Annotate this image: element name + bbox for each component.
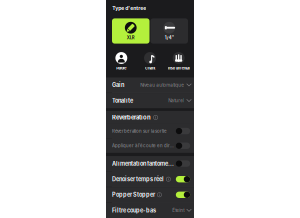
button[interactable]: Instrumental (164, 52, 193, 71)
button[interactable]: Chant (136, 52, 164, 71)
staticText: Gain (112, 82, 124, 88)
button[interactable]: Réverbération sur la sortie (106, 124, 194, 138)
staticText: XLR (127, 35, 135, 40)
button[interactable]: Popper Stopper (106, 187, 194, 202)
button[interactable]: Denoiser temps réel (106, 172, 194, 187)
staticText: Réverbération (112, 114, 151, 121)
button[interactable]: Alimentation fantôme... (106, 156, 194, 171)
staticText: Filtre coupe-bas (112, 207, 156, 214)
staticText: 1/4" (165, 35, 174, 40)
button[interactable]: XLR (112, 18, 149, 44)
staticText: Tonalité (112, 97, 133, 104)
staticText: Denoiser temps réel (112, 176, 164, 183)
button[interactable]: Tonalité (106, 93, 194, 108)
staticText: Naturel (168, 98, 184, 103)
staticText: Alimentation fantôme... (112, 160, 174, 167)
staticText: Chant (145, 66, 155, 71)
button[interactable]: Gain (106, 77, 194, 93)
staticText: Niveau automatique (140, 82, 184, 88)
staticText: Parole (116, 66, 126, 71)
staticText: Éteint (172, 208, 184, 213)
staticText: Popper Stopper (112, 191, 155, 198)
button[interactable]: Appliquer à l'écoute en direct (106, 139, 194, 153)
staticText: Type d'entrée (112, 5, 146, 11)
button[interactable]: 1/4" (150, 18, 188, 44)
button[interactable]: Filtre coupe-bas (106, 203, 194, 218)
staticText: Réverbération sur la sortie (112, 128, 167, 134)
button[interactable]: Parole (107, 52, 136, 71)
staticText: Instrumental (168, 66, 190, 71)
staticText: Appliquer à l'écoute en direct (112, 143, 175, 148)
